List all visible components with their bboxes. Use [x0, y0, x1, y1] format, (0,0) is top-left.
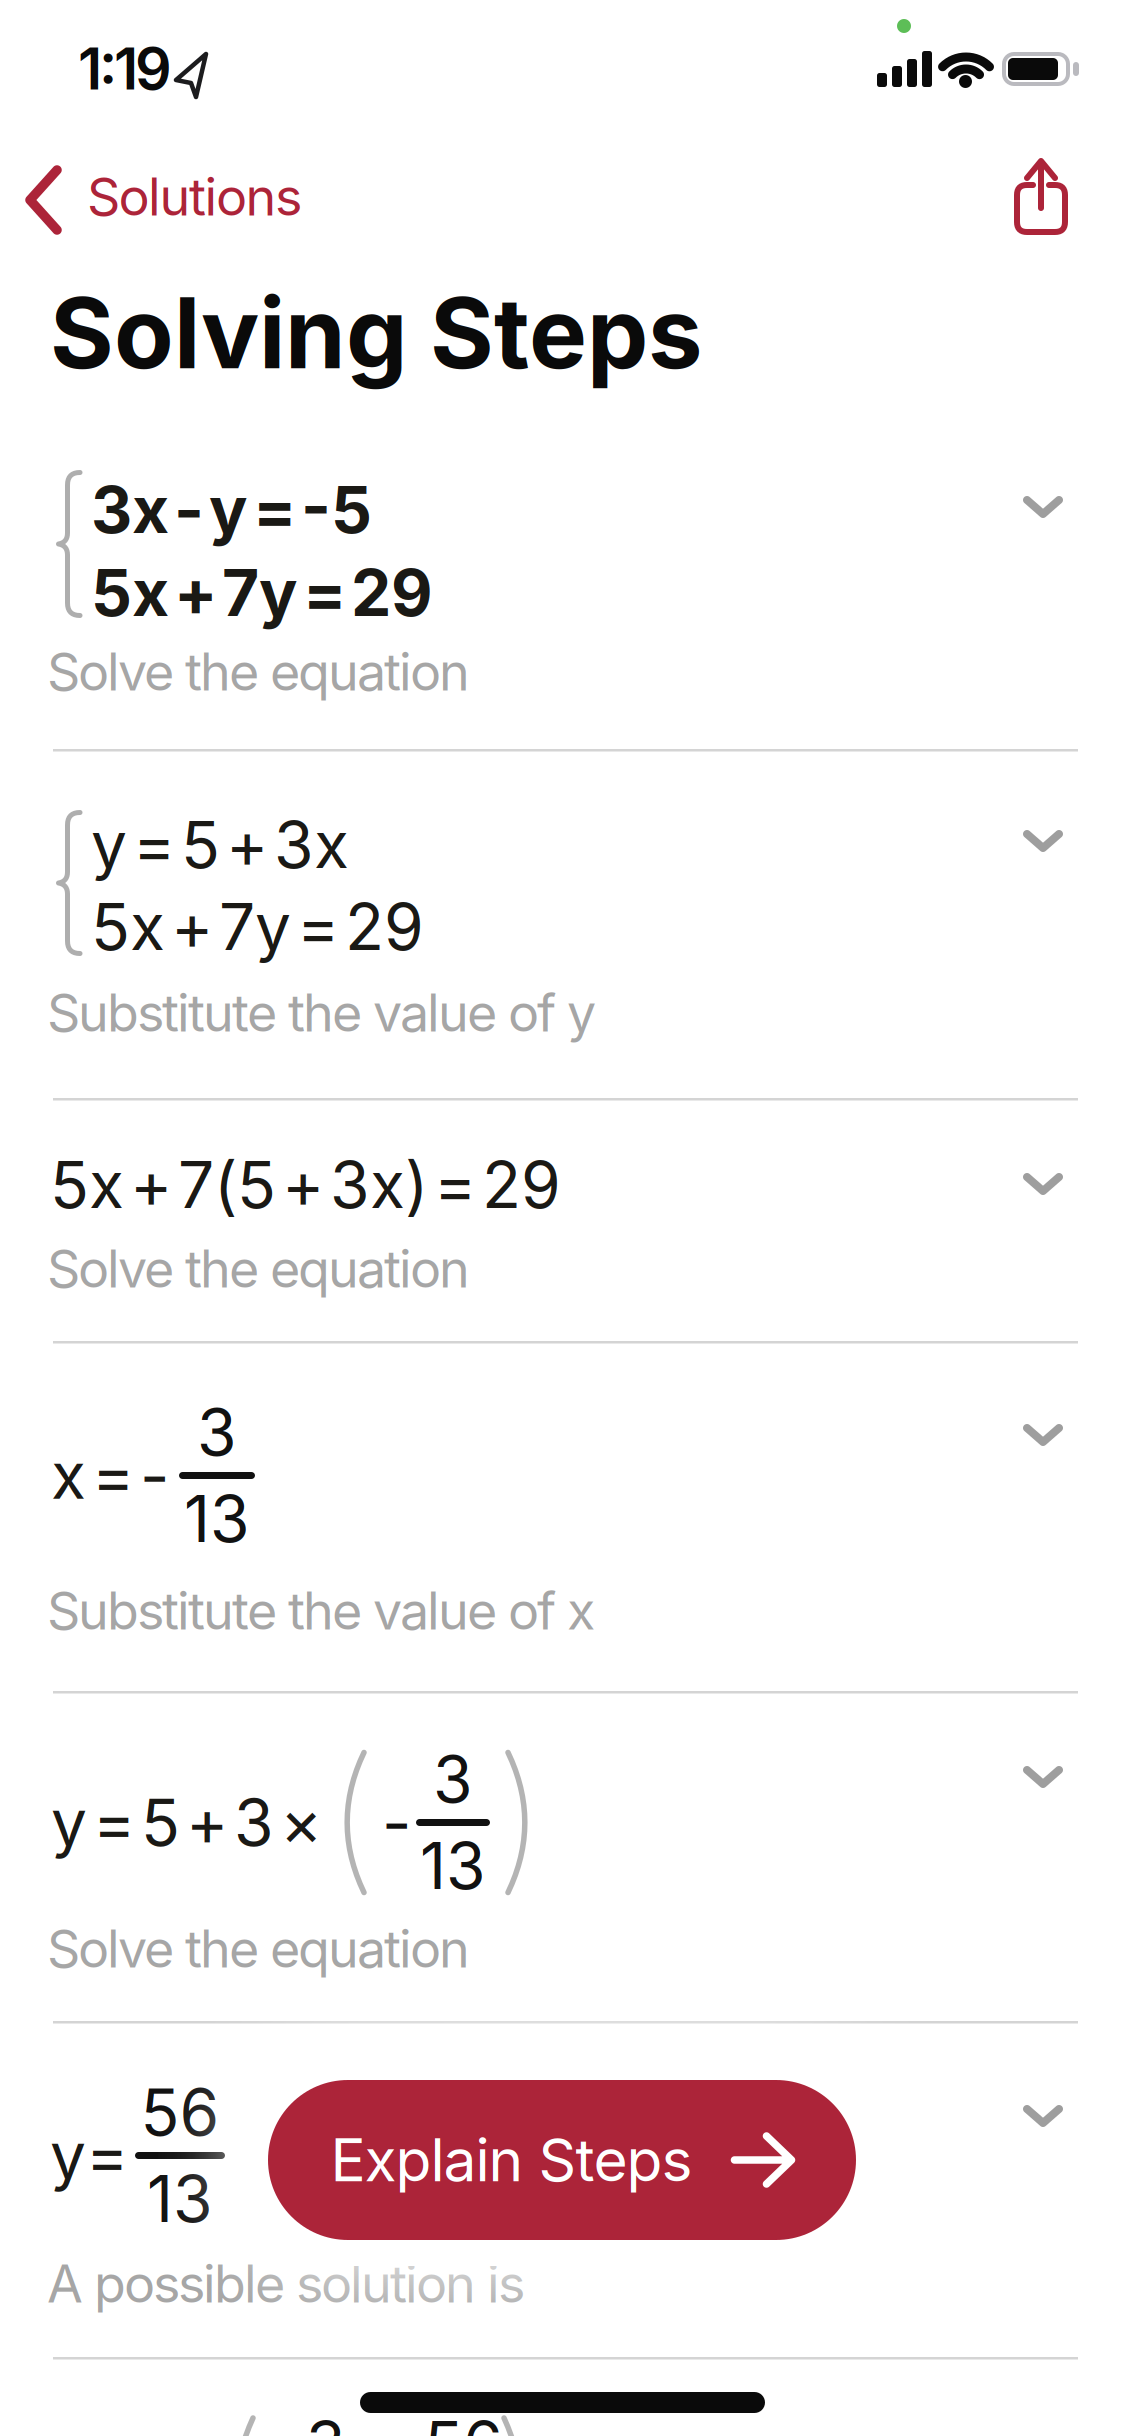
- button[interactable]: Share: [1000, 147, 1080, 247]
- button[interactable]: Explain Steps: [268, 2080, 856, 2240]
- staticText: 5x + 7y = 29: [91, 889, 424, 964]
- staticText: Solutions: [87, 165, 302, 228]
- staticText: x = -: [51, 1438, 169, 1513]
- button[interactable]: Back to Solutions: [22, 160, 402, 240]
- staticText: y = 5 + 3 ×: [51, 1785, 328, 1860]
- button[interactable]: y = 5 + 3 ×: [0, 1693, 1125, 2023]
- staticText: -: [382, 1784, 411, 1861]
- button[interactable]: 3x - y = -5: [0, 440, 1125, 750]
- staticText: 56: [140, 2074, 219, 2151]
- staticText: Substitute the value of x: [47, 1579, 595, 1642]
- staticText: A possible solution is: [47, 2252, 525, 2315]
- button[interactable]: y = 5 + 3x: [0, 751, 1125, 1100]
- staticText: Solve the equation: [47, 1237, 470, 1300]
- staticText: y = 5 + 3x: [91, 807, 349, 882]
- staticText: 13: [147, 2160, 213, 2237]
- staticText: 1:19: [78, 34, 172, 103]
- button[interactable]: Final solution: [0, 2359, 1125, 2436]
- staticText: y=: [50, 2118, 128, 2193]
- button[interactable]: y=: [0, 2023, 1125, 2359]
- staticText: 3x - y = -5: [91, 472, 372, 547]
- staticText: Substitute the value of y: [47, 981, 596, 1044]
- staticText: 3: [197, 1394, 237, 1471]
- staticText: 5x + 7y = 29: [91, 555, 433, 630]
- staticText: Explain Steps: [330, 2124, 692, 2195]
- staticText: Solving Steps: [50, 274, 703, 392]
- staticText: 3: [306, 2406, 346, 2436]
- staticText: Solve the equation: [47, 640, 470, 703]
- staticText: Solve the equation: [47, 1917, 470, 1980]
- staticText: 13: [184, 1480, 250, 1557]
- staticText: 56: [424, 2406, 503, 2436]
- staticText: 5x + 7(5 + 3x) = 29: [50, 1147, 561, 1222]
- button[interactable]: x = -: [0, 1343, 1125, 1693]
- staticText: 13: [420, 1827, 486, 1904]
- button[interactable]: 5x + 7(5 + 3x) = 29: [0, 1100, 1125, 1343]
- staticText: 3: [433, 1741, 473, 1818]
